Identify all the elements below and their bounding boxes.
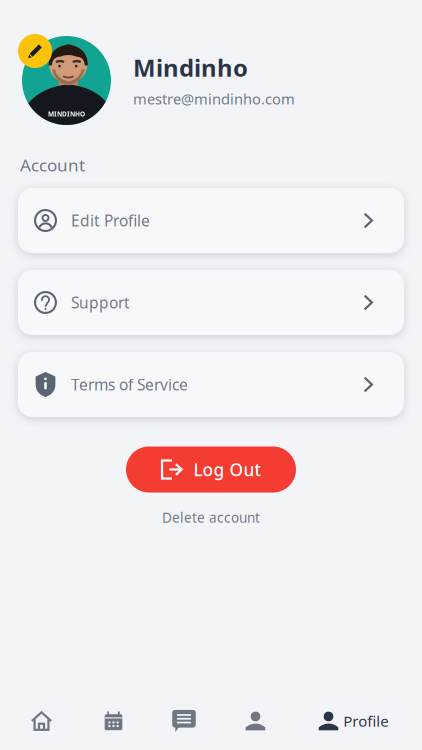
staticText: Log Out <box>193 458 261 481</box>
button[interactable]: Home <box>10 697 72 745</box>
button[interactable]: Calendar <box>82 697 144 745</box>
button[interactable]: Contacts <box>224 697 286 745</box>
button[interactable]: Messages <box>153 697 215 745</box>
button[interactable]: Profile <box>309 697 398 745</box>
button[interactable]: Terms of Service <box>18 352 404 417</box>
staticText: Profile <box>343 711 388 731</box>
staticText: Mindinho <box>133 51 248 84</box>
button[interactable]: Delete account <box>148 502 274 533</box>
button[interactable]: Log Out <box>126 446 296 492</box>
button[interactable]: Edit profile photo <box>18 34 52 68</box>
button[interactable]: Edit Profile <box>18 188 404 253</box>
staticText: Account <box>20 153 85 177</box>
staticText: Delete account <box>162 508 260 527</box>
staticText: MINDINHO <box>48 109 85 118</box>
staticText: Support <box>71 292 130 313</box>
button[interactable]: Support <box>18 270 404 335</box>
staticText: Edit Profile <box>71 210 150 231</box>
staticText: Terms of Service <box>71 374 188 395</box>
staticText: mestre@mindinho.com <box>133 89 295 109</box>
